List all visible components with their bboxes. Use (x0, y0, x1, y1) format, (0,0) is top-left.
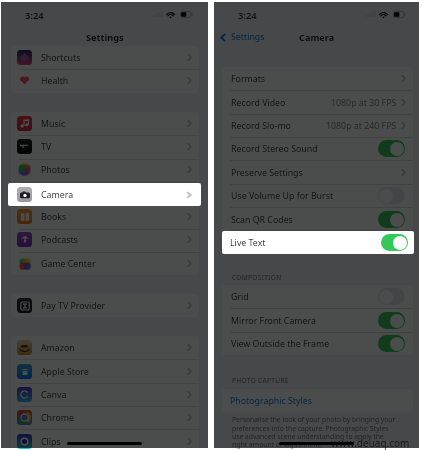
staticText: Grid (231, 291, 249, 303)
staticText: Settings (231, 31, 265, 43)
button[interactable]: Live Text (222, 231, 413, 254)
staticText: 3:24 (238, 9, 257, 22)
button[interactable]: Toggle (378, 140, 405, 157)
button[interactable]: Record Video (222, 91, 413, 114)
staticText: TV (41, 141, 52, 153)
staticText: Pay TV Provider (41, 300, 106, 312)
staticText: Photographic Styles (230, 395, 312, 407)
staticText: Use Volume Up for Burst (231, 190, 334, 202)
button[interactable]: TV (11, 135, 199, 158)
staticText: Books (41, 211, 67, 223)
staticText: Formats (231, 73, 266, 85)
button[interactable]: Amazon (11, 336, 199, 359)
staticText: 1080p at 30 FPS (331, 97, 397, 109)
button[interactable]: Record Stereo Sound (222, 137, 413, 160)
staticText: Record Stereo Sound (231, 143, 318, 155)
button[interactable]: Toggle (378, 187, 405, 204)
staticText: View Outside the Frame (231, 338, 330, 350)
staticText: COMPOSITION (232, 273, 282, 282)
staticText: Personalise the look of your photo by br… (232, 415, 397, 449)
button[interactable]: Photos (11, 158, 199, 181)
staticText: Live Text (230, 237, 266, 249)
staticText: Record Slo-mo (231, 120, 291, 132)
button[interactable]: Toggle (381, 234, 408, 251)
staticText: 3:24 (25, 9, 44, 22)
button[interactable]: Health (11, 69, 199, 92)
button[interactable]: Camera (11, 182, 199, 205)
staticText: Scan QR Codes (231, 214, 293, 226)
button[interactable]: Chrome (11, 406, 199, 429)
button[interactable]: Mirror Front Camera (222, 309, 413, 332)
button[interactable]: Scan QR Codes (222, 208, 413, 231)
button[interactable]: Canva (11, 383, 199, 406)
button[interactable]: Clips (11, 430, 199, 450)
button[interactable]: Pay TV Provider (11, 294, 199, 317)
button[interactable]: Preserve Settings (222, 161, 413, 184)
staticText: Photos (41, 164, 70, 176)
staticText: Shortcuts (41, 52, 81, 64)
button[interactable]: Photographic Styles (222, 389, 413, 412)
staticText: Camera (299, 31, 335, 44)
button[interactable]: Toggle (378, 312, 405, 329)
staticText: Health (41, 75, 69, 87)
button[interactable]: Formats (222, 67, 413, 90)
button[interactable]: Grid (222, 285, 413, 308)
staticText: Camera (41, 188, 74, 200)
staticText: Camera (41, 189, 74, 201)
button[interactable]: Toggle (378, 288, 405, 305)
button[interactable]: Settings (220, 29, 265, 45)
staticText: Preserve Settings (231, 167, 303, 179)
button[interactable]: Use Volume Up for Burst (222, 184, 413, 207)
button[interactable]: Game Center (11, 252, 199, 275)
button[interactable]: Apple Store (11, 360, 199, 383)
staticText: Settings (86, 31, 124, 44)
staticText: Game Center (41, 258, 96, 270)
button[interactable]: Record Slo-mo (222, 114, 413, 137)
staticText: 1080p at 240 FPS (326, 120, 397, 132)
staticText: Record Video (231, 97, 286, 109)
button[interactable]: Shortcuts (11, 46, 199, 69)
button[interactable]: Music (11, 112, 199, 135)
button[interactable]: Live Text (222, 231, 414, 254)
staticText: Live Text (231, 237, 267, 249)
staticText: Apple Store (41, 366, 89, 378)
staticText: Chrome (41, 412, 74, 424)
button[interactable]: Camera (8, 183, 201, 206)
button[interactable]: Books (11, 205, 199, 228)
button[interactable]: Toggle (378, 211, 405, 228)
button[interactable]: View Outside the Frame (222, 332, 413, 355)
staticText: Amazon (41, 342, 75, 354)
staticText: Clips (41, 436, 61, 448)
staticText: Podcasts (41, 234, 78, 246)
staticText: PHOTO CAPTURE (232, 376, 289, 385)
staticText: Music (41, 118, 66, 130)
staticText: Canva (41, 389, 67, 401)
button[interactable]: Toggle (378, 335, 405, 352)
button[interactable]: Podcasts (11, 228, 199, 251)
button[interactable]: Toggle (378, 234, 405, 251)
staticText: www.deuaq.com (331, 436, 410, 450)
staticText: Mirror Front Camera (231, 315, 316, 327)
